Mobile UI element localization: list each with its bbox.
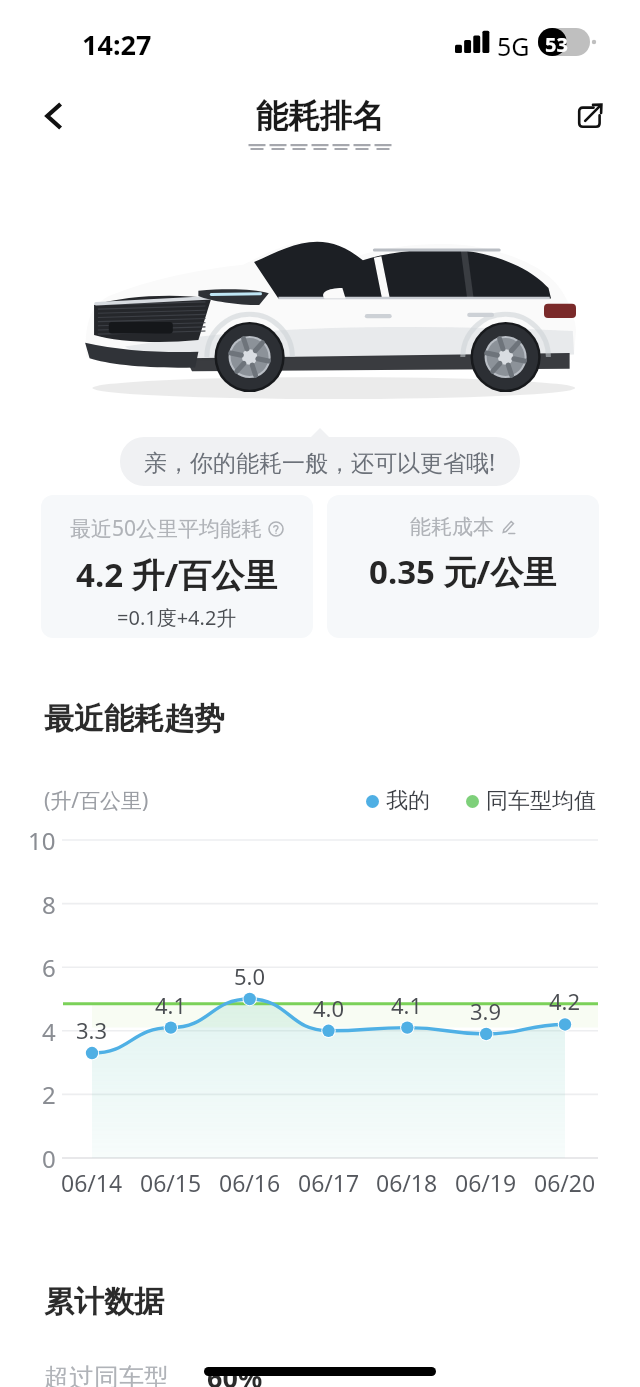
staticText: 能耗排名 bbox=[256, 96, 384, 136]
staticText: 4 bbox=[42, 1015, 56, 1048]
staticText: 4.2 升/百公里 bbox=[76, 552, 278, 597]
staticText: 0 bbox=[42, 1142, 56, 1175]
staticText: 10 bbox=[28, 824, 56, 857]
button[interactable]: 亲，你的能耗一般，还可以更省哦! bbox=[120, 437, 520, 486]
button[interactable]: Share bbox=[554, 80, 626, 152]
button[interactable]: 最近50公里平均能耗 bbox=[41, 495, 313, 638]
staticText: 3.9 bbox=[470, 996, 502, 1026]
staticText: 5G bbox=[497, 29, 530, 63]
staticText: 06/15 bbox=[140, 1167, 202, 1198]
staticText: 超过同车型 bbox=[44, 1362, 169, 1387]
staticText: 60% bbox=[207, 1359, 263, 1387]
staticText: 4.2 bbox=[549, 986, 581, 1016]
staticText: 0.35 元/公里 bbox=[369, 549, 557, 594]
staticText: 最近50公里平均能耗 bbox=[70, 514, 263, 543]
staticText: 4.1 bbox=[155, 990, 187, 1020]
staticText: 53 bbox=[545, 31, 568, 58]
staticText: (升/百公里) bbox=[44, 786, 149, 815]
staticText: 06/16 bbox=[219, 1167, 281, 1198]
staticText: 14:27 bbox=[82, 26, 152, 63]
staticText: 8 bbox=[42, 888, 56, 921]
staticText: 我的 bbox=[386, 787, 430, 815]
button[interactable]: 同车型均值 bbox=[466, 787, 596, 815]
staticText: 06/18 bbox=[376, 1167, 438, 1198]
staticText: 4.1 bbox=[391, 990, 423, 1020]
staticText: =0.1度+4.2升 bbox=[117, 604, 237, 631]
staticText: 能耗成本 bbox=[410, 514, 494, 540]
staticText: 最近能耗趋势 bbox=[44, 700, 224, 738]
staticText: 2 bbox=[42, 1078, 56, 1111]
staticText: 亲，你的能耗一般，还可以更省哦! bbox=[144, 446, 496, 477]
button[interactable]: 我的 bbox=[366, 787, 430, 815]
staticText: 06/14 bbox=[61, 1167, 123, 1198]
button[interactable]: 能耗成本 bbox=[327, 495, 599, 638]
staticText: 6 bbox=[42, 951, 56, 984]
staticText: 累计数据 bbox=[44, 1283, 164, 1321]
staticText: 同车型均值 bbox=[486, 787, 596, 815]
staticText: 4.0 bbox=[313, 993, 345, 1023]
staticText: 5.0 bbox=[234, 961, 266, 991]
staticText: 06/20 bbox=[534, 1167, 596, 1198]
staticText: 06/17 bbox=[298, 1167, 360, 1198]
staticText: 3.3 bbox=[76, 1015, 108, 1045]
staticText: 06/19 bbox=[455, 1167, 517, 1198]
button[interactable]: Back bbox=[18, 80, 90, 152]
